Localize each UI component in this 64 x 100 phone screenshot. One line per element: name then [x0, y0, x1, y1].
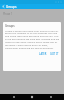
- button[interactable]: LATER: [39, 52, 47, 56]
- button[interactable]: GOT IT: [50, 52, 59, 56]
- staticText: Groups: [5, 24, 15, 28]
- button[interactable]: Recents: [46, 94, 56, 100]
- button[interactable]: Back: [0, 4, 6, 9]
- button[interactable]: Home: [27, 94, 37, 100]
- button[interactable]: Groups: [3, 22, 61, 71]
- staticText: Groups: [6, 5, 17, 9]
- staticText: Phase 1: [3, 12, 13, 16]
- staticText: Create a group and invite your friends t…: [5, 29, 59, 50]
- button[interactable]: Back: [9, 94, 19, 100]
- staticText: LATER: [39, 52, 47, 56]
- staticText: GOT IT: [50, 52, 59, 56]
